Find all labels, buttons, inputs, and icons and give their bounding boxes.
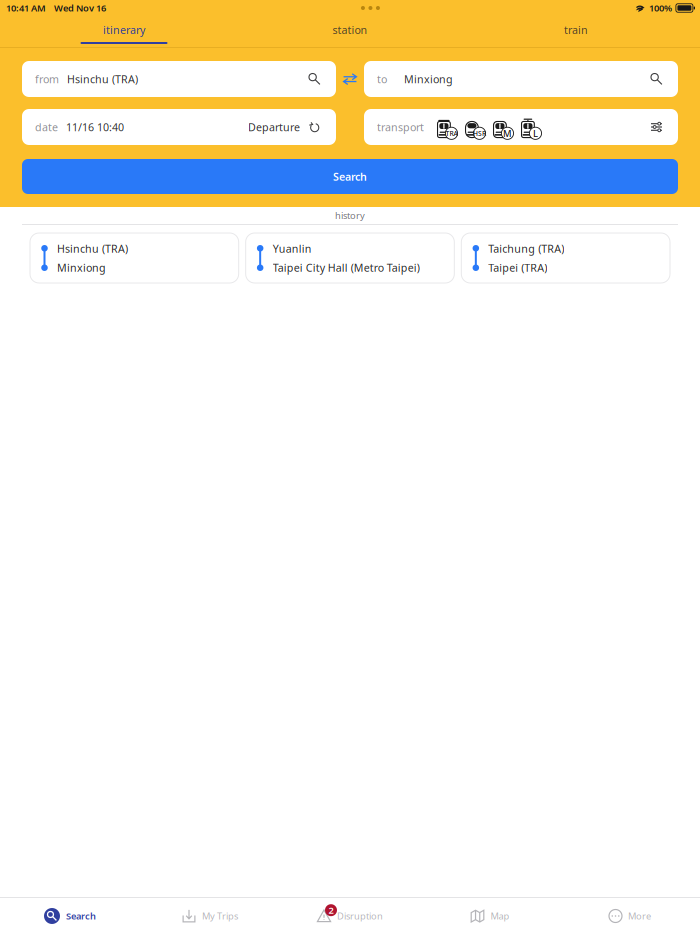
button[interactable]: Search (22, 159, 678, 194)
staticText: L (533, 127, 538, 139)
button[interactable]: Swap origin and destination (336, 61, 364, 97)
staticText: to (377, 72, 387, 86)
staticText: Taipei City Hall (Metro Taipei) (273, 260, 420, 275)
button[interactable]: train (463, 16, 689, 47)
staticText: Disruption (337, 910, 383, 922)
staticText: 100% (649, 2, 672, 14)
staticText: Taipei (TRA) (488, 260, 547, 275)
button[interactable]: 2 (280, 898, 420, 934)
staticText: 11/16 10:40 (66, 120, 124, 134)
button[interactable]: Map (420, 898, 560, 934)
staticText: More (628, 910, 651, 922)
button[interactable]: station (237, 16, 463, 47)
staticText: history (335, 209, 365, 222)
staticText: 10:41 AM (6, 2, 46, 14)
staticText: itinerary (103, 23, 145, 37)
staticText: Search (66, 910, 96, 922)
staticText: Minxiong (404, 72, 453, 86)
staticText: transport (377, 120, 424, 134)
staticText: Yuanlin (273, 241, 312, 256)
staticText: Map (490, 910, 509, 922)
button[interactable]: Yuanlin (246, 233, 454, 283)
staticText: Minxiong (57, 260, 106, 275)
staticText: My Trips (202, 910, 238, 922)
staticText: date (35, 120, 58, 134)
button[interactable]: Search (0, 898, 140, 934)
staticText: 2 (328, 904, 333, 916)
staticText: Hsinchu (TRA) (57, 241, 128, 256)
staticText: Departure (248, 120, 300, 134)
button[interactable]: Hsinchu (TRA) (30, 233, 239, 283)
staticText: from (35, 72, 59, 86)
button[interactable]: My Trips (140, 898, 280, 934)
button[interactable]: Transport filters (651, 121, 662, 132)
staticText: M (503, 127, 512, 139)
staticText: HSR (473, 129, 486, 138)
button[interactable]: Departure (248, 120, 320, 134)
staticText: station (332, 23, 367, 37)
staticText: TRA (445, 129, 457, 138)
staticText: Search (333, 169, 367, 184)
staticText: train (564, 23, 588, 37)
button[interactable]: Taichung (TRA) (461, 233, 670, 283)
button[interactable]: More (560, 898, 700, 934)
staticText: Hsinchu (TRA) (67, 72, 138, 86)
button[interactable]: itinerary (11, 16, 237, 47)
staticText: Taichung (TRA) (488, 241, 564, 256)
staticText: Wed Nov 16 (54, 2, 106, 14)
